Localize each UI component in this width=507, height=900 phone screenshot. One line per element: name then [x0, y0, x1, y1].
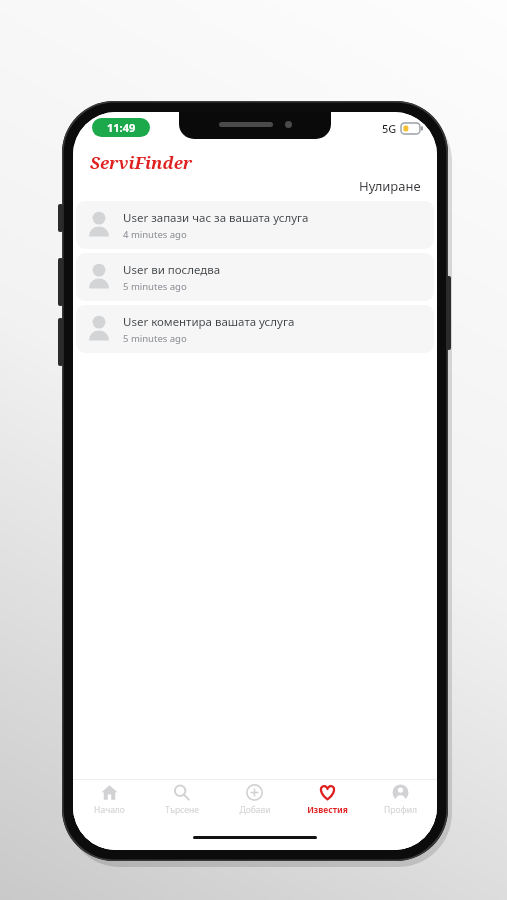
staticText: 5G — [382, 121, 397, 136]
staticText: Профил — [384, 804, 417, 816]
staticText: Нулиране — [359, 177, 421, 195]
staticText: Начало — [94, 804, 125, 816]
other: Home — [101, 784, 118, 801]
staticText: Търсене — [165, 804, 199, 816]
staticText: User запази час за вашата услуга — [123, 210, 309, 226]
staticText: 5 minutes ago — [123, 280, 187, 293]
button[interactable]: Notifications — [291, 780, 364, 824]
button[interactable]: Profile — [364, 780, 437, 824]
staticText: 11:49 — [107, 120, 136, 135]
button[interactable]: Нулиране — [343, 175, 437, 197]
staticText: Добави — [239, 804, 271, 816]
button[interactable]: User запази час за вашата услуга — [76, 201, 434, 249]
staticText: User ви последва — [123, 262, 221, 278]
button[interactable]: Search — [145, 780, 218, 824]
other: Add — [246, 784, 263, 801]
button[interactable]: User коментира вашата услуга — [76, 305, 434, 353]
button[interactable]: User ви последва — [76, 253, 434, 301]
button[interactable]: Home — [73, 780, 145, 824]
staticText: User коментира вашата услуга — [123, 314, 295, 330]
other: Search — [173, 784, 190, 801]
staticText: Известия — [307, 804, 348, 816]
other: Profile — [392, 784, 409, 801]
button[interactable]: Add — [218, 780, 291, 824]
staticText: 4 minutes ago — [123, 228, 187, 241]
staticText: 5 minutes ago — [123, 332, 187, 345]
other: Notifications — [319, 784, 336, 801]
staticText: ServiFinder — [90, 151, 193, 174]
